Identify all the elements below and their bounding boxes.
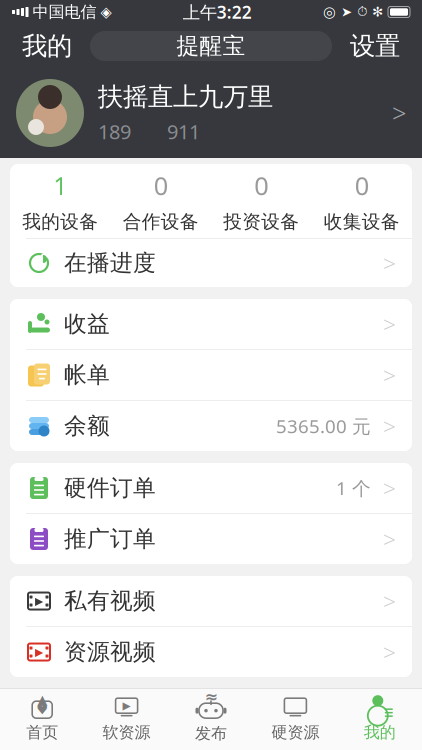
staticText: ✻ (372, 4, 383, 19)
button[interactable]: 我的 (8, 28, 86, 64)
button[interactable]: ◗ (10, 239, 412, 287)
staticText: ≈ (204, 688, 217, 706)
staticText: 上午3:22 (183, 0, 252, 23)
button[interactable]: 硬资源 (253, 691, 338, 747)
button[interactable]: 1 (10, 164, 110, 238)
staticText: 软资源 (103, 723, 151, 742)
staticText: 1 个 (336, 476, 371, 500)
staticText: 中国电信 (32, 2, 96, 22)
staticText: 我的 (364, 723, 396, 742)
staticText: 1 (53, 169, 67, 202)
button[interactable]: 0 (110, 164, 211, 238)
staticText: 帐单 (64, 361, 110, 389)
staticText: 资源视频 (64, 638, 156, 666)
staticText: 0 (154, 169, 168, 202)
staticText: ◈ (100, 4, 111, 20)
staticText: 我的 (22, 30, 72, 61)
staticText: 设置 (350, 30, 400, 61)
staticText: 推广订单 (64, 525, 156, 553)
staticText: 硬件订单 (64, 474, 156, 502)
staticText: ◗ (42, 252, 48, 264)
staticText: 0 (355, 169, 369, 202)
button[interactable]: ▶ (10, 576, 412, 626)
staticText: > (383, 360, 396, 390)
button[interactable]: 硬件订单 (10, 463, 412, 513)
staticText: 提醒宝 (176, 32, 245, 60)
staticText: 收益 (64, 310, 110, 338)
staticText: ▶ (35, 595, 43, 607)
staticText: ➤ (341, 4, 352, 19)
button[interactable]: 扶摇直上九万里 (0, 68, 422, 158)
button[interactable]: 提醒宝 (90, 31, 332, 61)
staticText: ◎ (323, 4, 336, 20)
staticText: 合作设备 (123, 210, 199, 233)
button[interactable]: 设置 (336, 28, 414, 64)
button[interactable]: 0 (311, 164, 412, 238)
staticText: 余额 (64, 412, 110, 440)
staticText: 硬资源 (271, 723, 319, 742)
staticText: ▶ (35, 646, 43, 658)
staticText: 0 (254, 169, 268, 202)
staticText: > (392, 96, 406, 130)
staticText: 投资设备 (223, 210, 299, 233)
staticText: ▶ (123, 700, 131, 712)
staticText: 首页 (26, 723, 58, 742)
button[interactable]: ▲ (0, 691, 84, 747)
staticText: > (383, 309, 396, 339)
staticText: > (383, 637, 396, 667)
staticText: ♥ (36, 702, 48, 717)
button[interactable]: 我的 (338, 691, 422, 747)
staticText: 911 (167, 118, 200, 145)
button[interactable]: 余额 (10, 401, 412, 451)
button[interactable]: 推广订单 (10, 514, 412, 564)
staticText: 我的设备 (22, 210, 98, 233)
staticText: 在播进度 (64, 249, 156, 277)
staticText: 5365.00 元 (276, 414, 371, 438)
button[interactable]: ▶ (84, 691, 169, 747)
staticText: 发布 (195, 724, 227, 743)
staticText: 扶摇直上九万里 (98, 81, 273, 112)
staticText: > (383, 248, 396, 278)
staticText: ▲ (37, 692, 47, 707)
staticText: ⏱ (357, 5, 367, 18)
button[interactable]: 0 (211, 164, 311, 238)
staticText: > (383, 473, 396, 503)
staticText: 私有视频 (64, 587, 156, 615)
button[interactable]: ▶ (10, 627, 412, 677)
staticText: > (383, 586, 396, 616)
staticText: > (383, 524, 396, 554)
staticText: 189 (98, 118, 131, 145)
staticText: > (383, 411, 396, 441)
button[interactable]: ≈ (169, 691, 253, 747)
button[interactable]: 帐单 (10, 350, 412, 400)
button[interactable]: 收益 (10, 299, 412, 349)
staticText: 收集设备 (324, 210, 400, 233)
